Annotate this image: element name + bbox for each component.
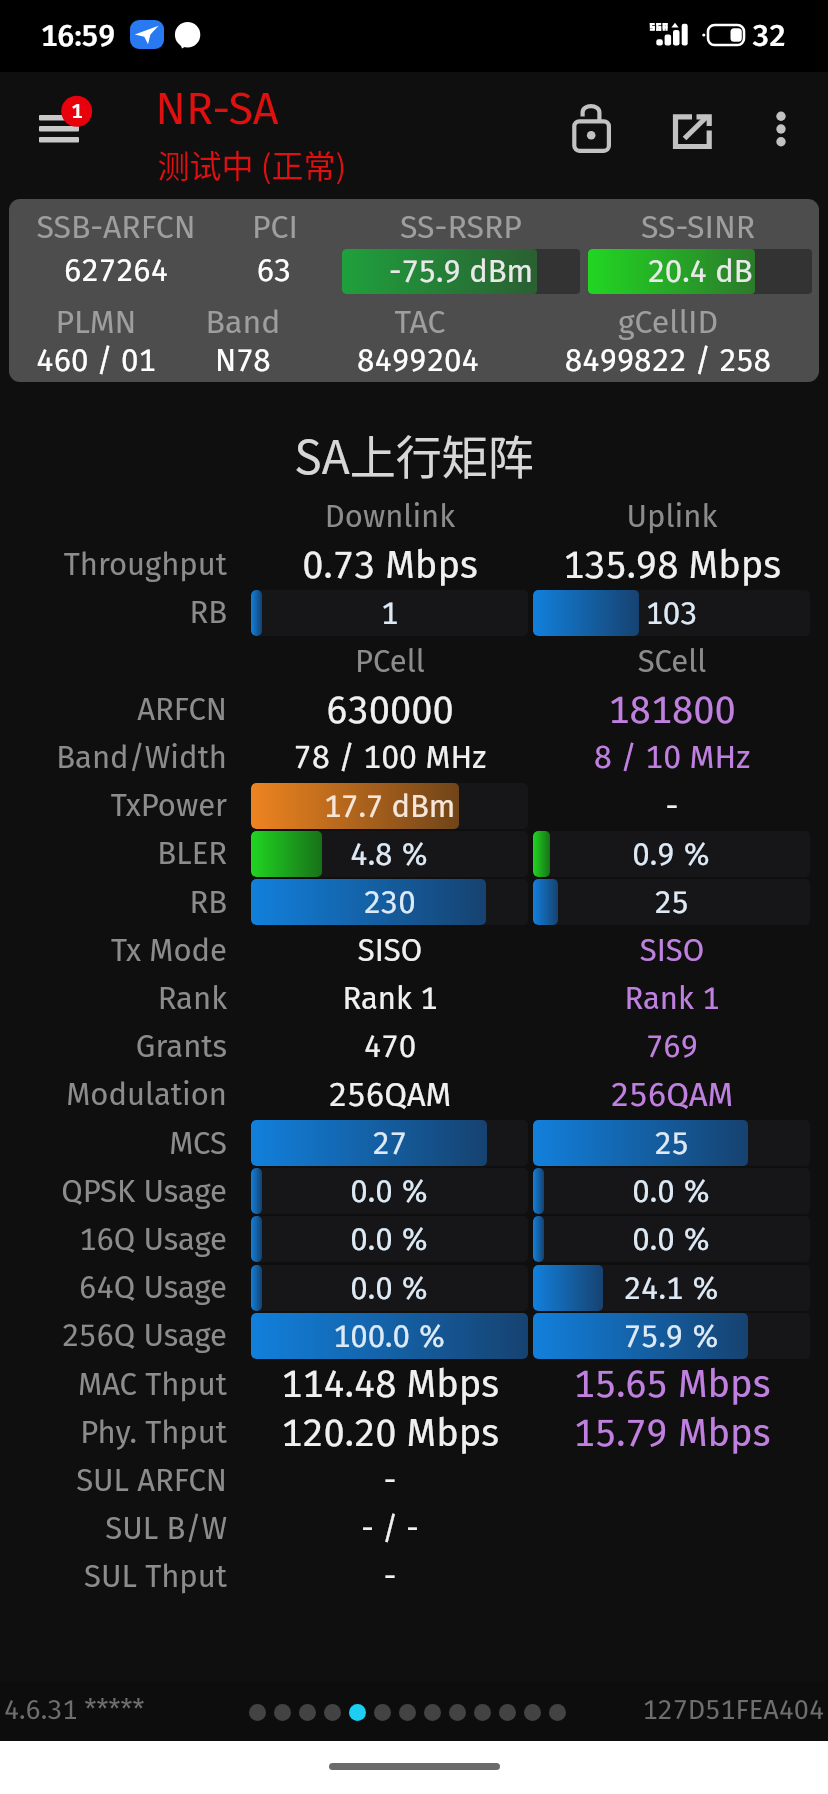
staticText: 256Q Usage	[0, 1317, 227, 1354]
staticText: 8 / 10 MHz	[512, 738, 828, 776]
staticText: 256QAM	[512, 1075, 828, 1115]
staticText: -	[230, 1462, 550, 1499]
staticText: SUL ARFCN	[0, 1462, 227, 1499]
staticText: 627264	[9, 252, 326, 289]
staticText: 0.0 %	[251, 1270, 528, 1307]
staticText: ARFCN	[0, 691, 227, 728]
staticText: 17.7 dBm	[251, 788, 528, 825]
staticText: 75.9 %	[533, 1318, 810, 1355]
button[interactable]	[549, 1704, 566, 1721]
staticText: 0.9 %	[533, 836, 810, 873]
button[interactable]	[349, 1704, 366, 1721]
staticText: QPSK Usage	[0, 1173, 227, 1210]
staticText: 0.0 %	[533, 1173, 810, 1210]
staticText: 4.8 %	[251, 836, 528, 873]
staticText: 460 / 01	[9, 342, 306, 379]
staticText: TAC	[210, 303, 630, 341]
staticText: Uplink	[512, 498, 828, 535]
staticText: 27	[251, 1125, 528, 1162]
staticText: - / -	[230, 1510, 550, 1547]
staticText: SUL B/W	[0, 1510, 227, 1547]
staticText: 16:59	[0, 18, 158, 54]
staticText: 114.48 Mbps	[230, 1361, 550, 1407]
staticText: -	[512, 787, 828, 825]
staticText: Tx Mode	[0, 932, 227, 969]
staticText: -75.9 dBm	[342, 253, 580, 290]
staticText: SS-RSRP	[251, 208, 671, 246]
staticText: 0.0 %	[533, 1221, 810, 1258]
staticText: 630000	[230, 687, 550, 733]
staticText: 8499204	[208, 342, 628, 379]
staticText: 135.98 Mbps	[512, 542, 828, 588]
staticText: 20.4 dB	[588, 253, 812, 290]
button[interactable]	[449, 1704, 466, 1721]
staticText: 0.0 %	[251, 1221, 528, 1258]
staticText: Phy. Thput	[0, 1414, 227, 1451]
staticText: SSB-ARFCN	[9, 208, 326, 246]
staticText: N78	[33, 342, 453, 379]
button[interactable]	[474, 1704, 491, 1721]
staticText: 16Q Usage	[0, 1221, 227, 1258]
staticText: Rank 1	[230, 980, 550, 1017]
staticText: SISO	[512, 932, 828, 969]
staticText: SS-SINR	[488, 208, 819, 246]
button[interactable]	[399, 1704, 416, 1721]
button[interactable]: Open in new window	[656, 93, 728, 165]
staticText: 25	[533, 884, 810, 921]
button[interactable]	[299, 1704, 316, 1721]
staticText: BLER	[0, 835, 227, 872]
staticText: SA上行矩阵	[114, 421, 714, 488]
staticText: Downlink	[230, 498, 550, 535]
staticText: gCellID	[458, 303, 819, 341]
button[interactable]: More options	[745, 93, 817, 165]
staticText: 1	[57, 99, 97, 123]
button[interactable]	[424, 1704, 441, 1721]
staticText: 100.0 %	[251, 1318, 528, 1355]
staticText: 127D51FEA404	[524, 1694, 824, 1726]
staticText: 15.65 Mbps	[512, 1361, 828, 1407]
button[interactable]	[524, 1704, 541, 1721]
staticText: 24.1 %	[533, 1270, 810, 1307]
staticText: 8499822 / 258	[458, 342, 819, 379]
staticText: 769	[512, 1028, 828, 1065]
staticText: 78 / 100 MHz	[230, 738, 550, 776]
staticText: SCell	[512, 643, 828, 680]
button[interactable]	[324, 1704, 341, 1721]
button[interactable]	[249, 1704, 266, 1721]
staticText: 测试中 (正常)	[52, 141, 452, 187]
staticText: SISO	[230, 932, 550, 969]
staticText: 64Q Usage	[0, 1269, 227, 1306]
staticText: Band	[33, 303, 453, 341]
staticText: 32	[719, 18, 819, 54]
staticText: 15.79 Mbps	[512, 1410, 828, 1456]
button[interactable]	[274, 1704, 291, 1721]
staticText: PCI	[65, 208, 485, 246]
staticText: PLMN	[9, 303, 306, 341]
staticText: 230	[251, 884, 528, 921]
staticText: 256QAM	[230, 1075, 550, 1115]
staticText: MCS	[0, 1125, 227, 1162]
staticText: Band/Width	[0, 739, 227, 776]
staticText: 4.6.31 *****	[4, 1694, 304, 1726]
staticText: 63	[64, 252, 484, 289]
staticText: TxPower	[0, 787, 227, 824]
staticText: 0.73 Mbps	[230, 542, 550, 588]
staticText: NR-SA	[67, 82, 367, 136]
staticText: Grants	[0, 1028, 227, 1065]
staticText: 0.0 %	[251, 1173, 528, 1210]
staticText: RB	[0, 884, 227, 921]
staticText: SUL Thput	[0, 1558, 227, 1595]
staticText: MAC Thput	[0, 1366, 227, 1403]
staticText: Rank 1	[512, 980, 828, 1017]
button[interactable]	[499, 1704, 516, 1721]
staticText: 25	[533, 1125, 810, 1162]
staticText: 1	[251, 595, 528, 632]
staticText: 181800	[512, 687, 828, 733]
staticText: Rank	[0, 980, 227, 1017]
staticText: PCell	[230, 643, 550, 680]
staticText: Modulation	[0, 1076, 227, 1113]
button[interactable]: Navigation menu	[20, 88, 116, 184]
button[interactable]: Lock	[555, 92, 627, 164]
staticText: Throughput	[0, 546, 227, 583]
button[interactable]	[374, 1704, 391, 1721]
